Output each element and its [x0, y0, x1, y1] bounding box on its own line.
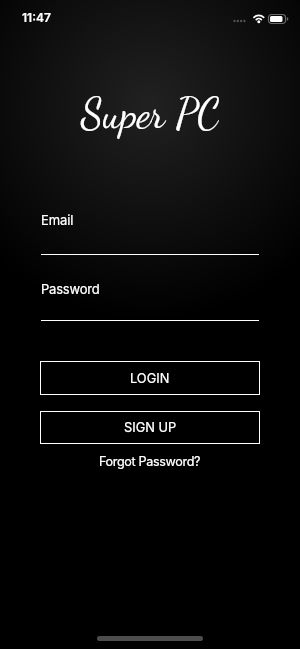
button[interactable]: LOGIN — [40, 361, 260, 395]
staticText: Email — [41, 212, 74, 228]
staticText: Password — [41, 281, 100, 297]
staticText: SIGN UP — [124, 420, 177, 435]
staticText: Forgot Password? — [99, 454, 201, 469]
button[interactable]: Forgot Password? — [99, 454, 201, 469]
staticText: LOGIN — [130, 371, 170, 386]
staticText: 11:47 — [22, 10, 51, 25]
staticText: Super PC — [81, 89, 220, 138]
button[interactable]: SIGN UP — [40, 411, 260, 444]
